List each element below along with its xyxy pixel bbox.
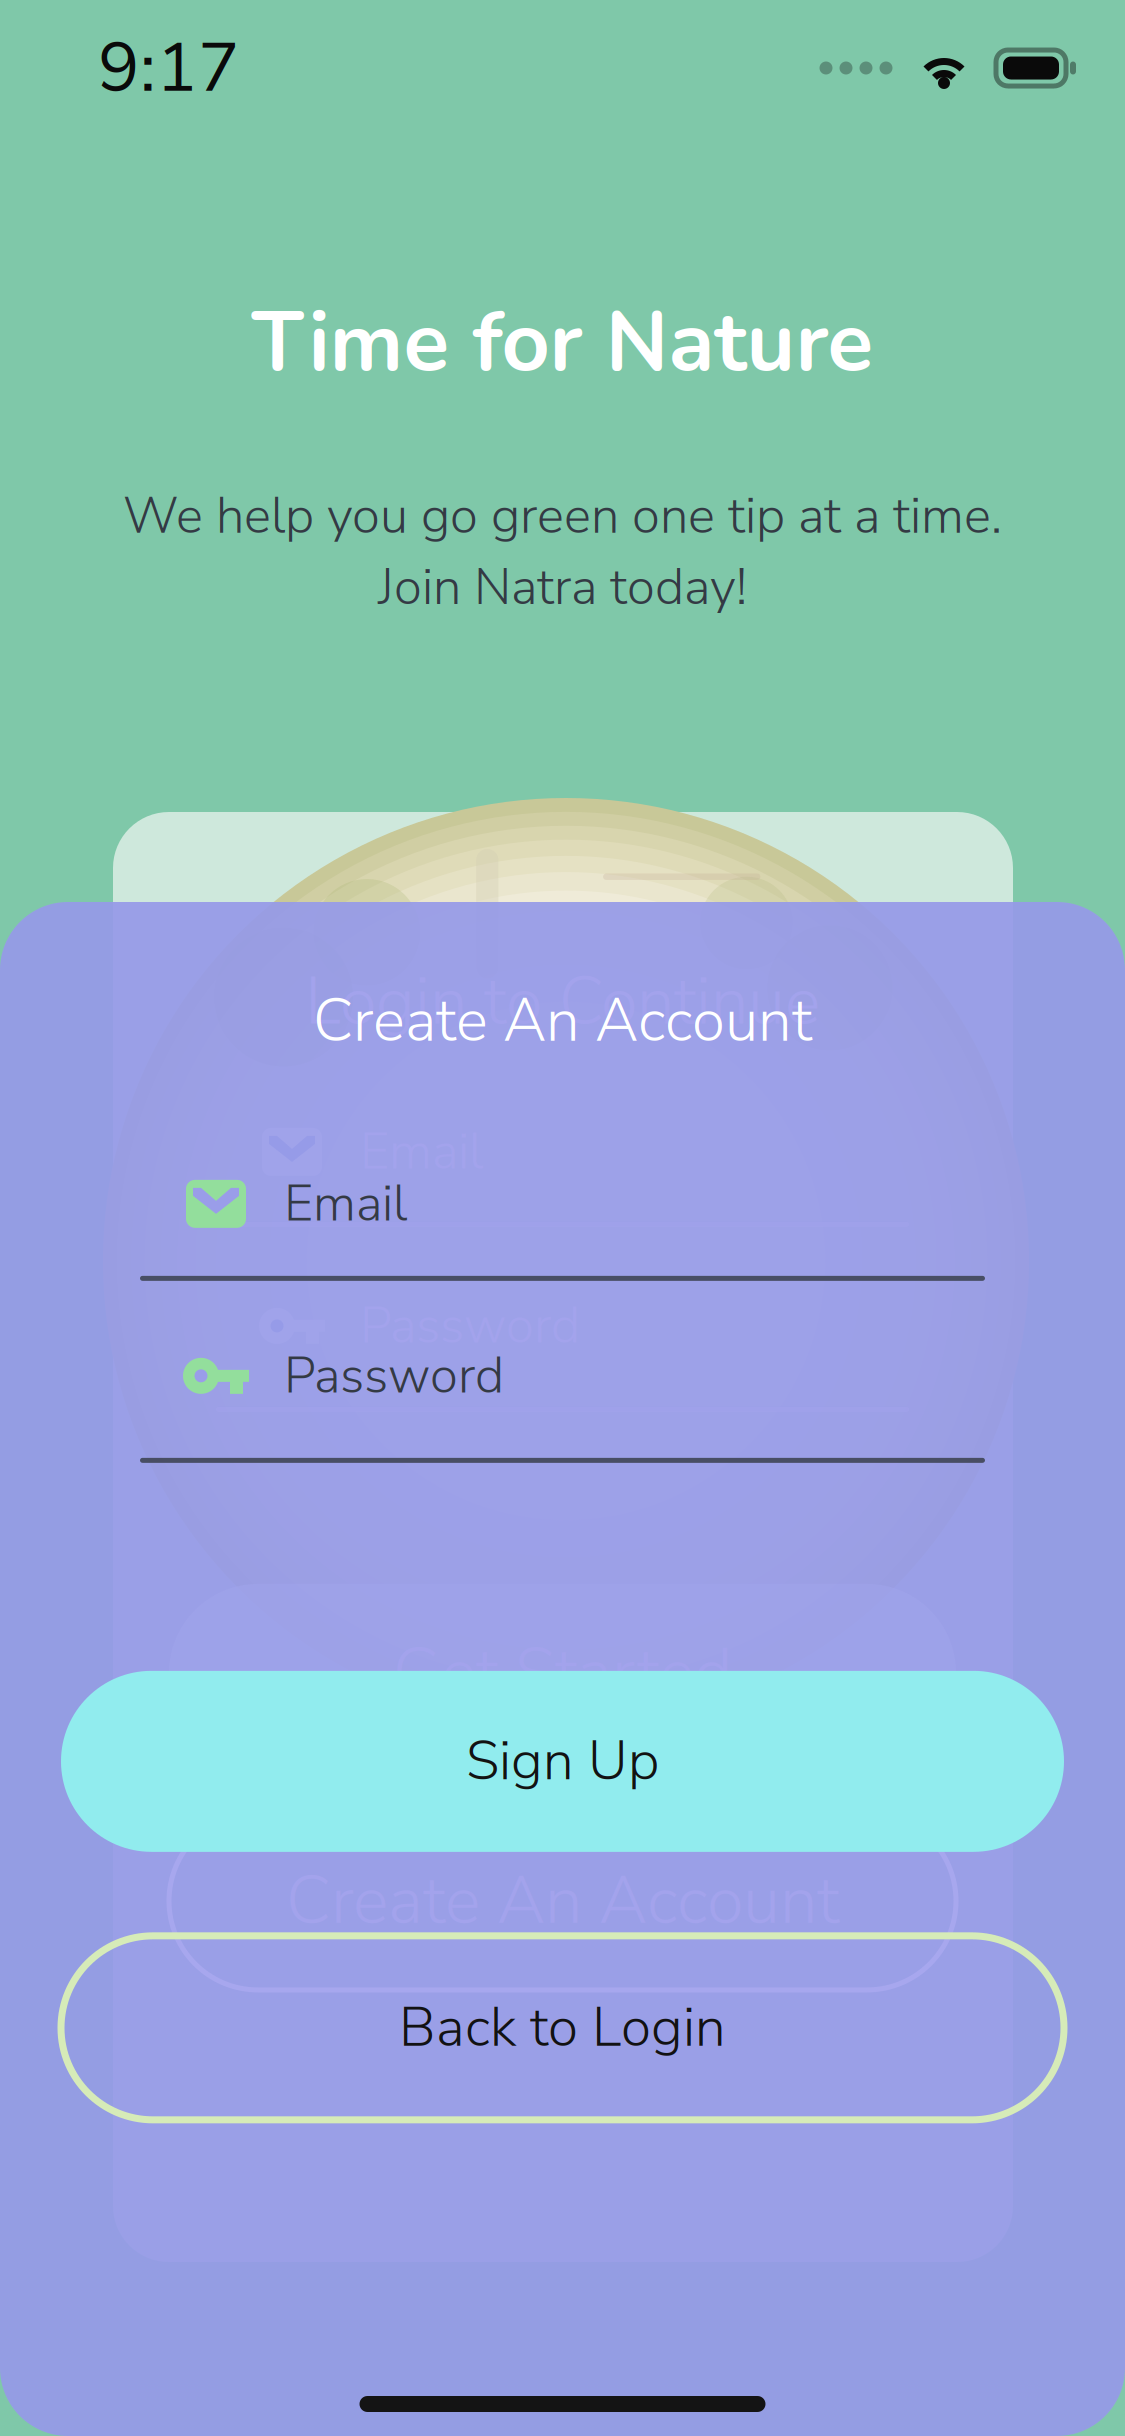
button[interactable]: Sign Up: [61, 1671, 1064, 1852]
staticText: Password: [284, 1341, 504, 1410]
button[interactable]: Back to Login: [61, 1936, 1064, 2120]
staticText: Email: [360, 1117, 483, 1186]
staticText: Get Started: [393, 1627, 732, 1718]
staticText: Sign Up: [466, 1724, 659, 1799]
staticText: Create An Account: [313, 980, 812, 1062]
staticText: Password: [360, 1291, 580, 1360]
staticText: Login to Continue: [305, 956, 820, 1047]
staticText: Email: [284, 1169, 407, 1238]
staticText: Create An Account: [286, 1855, 839, 1946]
staticText: Back to Login: [399, 1991, 726, 2065]
staticText: Join Natra today!: [378, 553, 747, 622]
staticText: Time for Nature: [251, 285, 873, 400]
staticText: 9:17: [98, 21, 240, 115]
staticText: We help you go green one tip at a time.: [123, 482, 1002, 551]
